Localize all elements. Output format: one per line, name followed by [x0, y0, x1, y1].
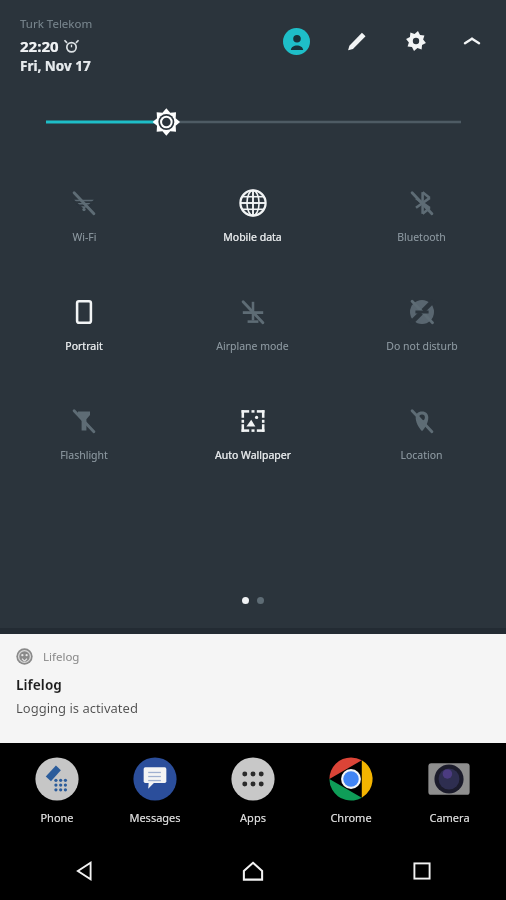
- staticText: Auto Wallpaper: [215, 448, 291, 462]
- staticText: Mobile data: [223, 230, 282, 244]
- button[interactable]: Bluetooth: [337, 184, 506, 248]
- button[interactable]: Back: [0, 842, 168, 900]
- button[interactable]: Settings: [396, 21, 436, 61]
- button[interactable]: Collapse: [452, 21, 492, 61]
- staticText: Camera: [429, 810, 470, 825]
- button[interactable]: Messages: [106, 755, 204, 825]
- button[interactable]: Do not disturb: [337, 293, 506, 357]
- staticText: Turk Telekom: [20, 16, 93, 32]
- staticText: 22:20: [20, 36, 59, 56]
- staticText: Wi-Fi: [72, 230, 97, 244]
- staticText: Lifelog: [43, 649, 80, 665]
- staticText: Location: [400, 448, 443, 462]
- staticText: Fri, Nov 17: [20, 57, 91, 75]
- staticText: Do not disturb: [386, 339, 458, 353]
- button[interactable]: Home: [168, 842, 337, 900]
- button[interactable]: Location: [337, 402, 506, 466]
- button[interactable]: Phone: [8, 755, 106, 825]
- button[interactable]: Wi-Fi: [0, 184, 168, 248]
- button[interactable]: Brightness: [0, 100, 506, 144]
- button[interactable]: Camera: [400, 755, 498, 825]
- button[interactable]: Airplane mode: [168, 293, 337, 357]
- staticText: Apps: [240, 810, 266, 825]
- staticText: Chrome: [330, 810, 372, 825]
- staticText: Portrait: [65, 339, 103, 353]
- staticText: Airplane mode: [216, 339, 289, 353]
- staticText: Logging is activated: [16, 699, 138, 717]
- button[interactable]: Chrome: [302, 755, 400, 825]
- staticText: Bluetooth: [397, 230, 446, 244]
- staticText: Messages: [129, 810, 181, 825]
- button[interactable]: Flashlight: [0, 402, 168, 466]
- button[interactable]: Edit tiles: [336, 21, 376, 61]
- button[interactable]: User profile: [276, 21, 316, 61]
- staticText: Flashlight: [60, 448, 108, 462]
- button[interactable]: Recents: [337, 842, 506, 900]
- staticText: Phone: [40, 810, 74, 825]
- button[interactable]: Mobile data: [168, 184, 337, 248]
- staticText: Lifelog: [16, 676, 62, 694]
- button[interactable]: Apps: [204, 755, 302, 825]
- button[interactable]: Lifelog: [0, 634, 506, 743]
- button[interactable]: Auto Wallpaper: [168, 402, 337, 466]
- button[interactable]: Portrait: [0, 293, 168, 357]
